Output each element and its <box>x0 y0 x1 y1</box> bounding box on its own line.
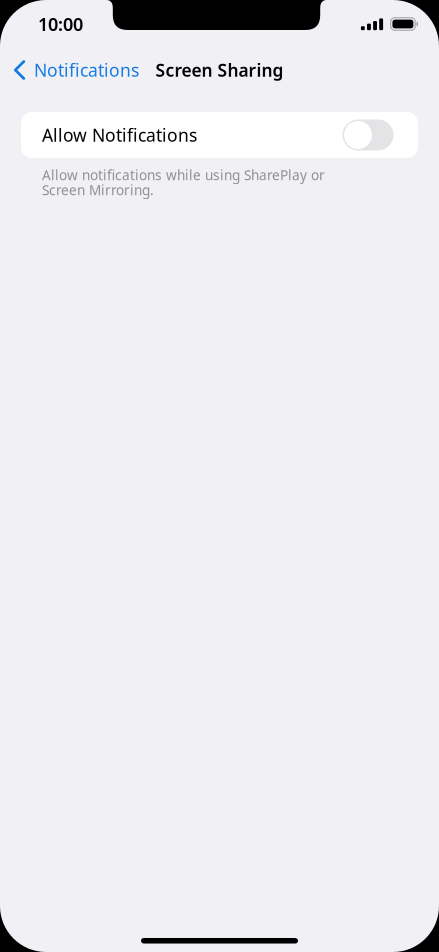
staticText: Screen Sharing <box>155 58 283 81</box>
staticText: Allow notifications while using SharePla… <box>42 166 325 184</box>
button[interactable]: Allow Notifications <box>21 112 418 158</box>
staticText: Notifications <box>34 58 139 82</box>
staticText: Allow Notifications <box>42 123 197 147</box>
staticText: Screen Mirroring. <box>42 181 154 199</box>
staticText: 10:00 <box>38 12 83 36</box>
button[interactable]: Notifications <box>0 52 139 88</box>
